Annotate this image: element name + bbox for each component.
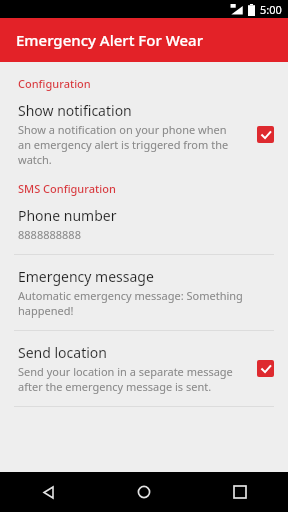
button[interactable]: Back — [0, 472, 96, 512]
button[interactable]: Toggle setting — [257, 360, 274, 377]
staticText: Send your location in a separate message — [18, 364, 233, 379]
staticText: Show notification — [18, 101, 132, 120]
button[interactable]: Phone number — [0, 206, 288, 242]
staticText: 8888888888 — [18, 227, 81, 242]
button[interactable]: Emergency message — [0, 267, 288, 318]
staticText: an emergency alert is triggered from the — [18, 137, 229, 152]
staticText: Send location — [18, 343, 107, 362]
staticText: Phone number — [18, 206, 117, 225]
staticText: happened! — [18, 303, 74, 318]
staticText: watch. — [18, 152, 52, 167]
button[interactable]: Send location — [0, 343, 288, 394]
staticText: Configuration — [18, 76, 91, 91]
staticText: 5:00 — [260, 2, 282, 17]
button[interactable]: Toggle setting — [257, 126, 274, 143]
button[interactable]: Recent apps — [192, 472, 288, 512]
staticText: Emergency message — [18, 267, 154, 286]
staticText: Automatic emergency message: Something — [18, 288, 243, 303]
staticText: after the emergency message is sent. — [18, 379, 212, 394]
button[interactable]: Show notification — [0, 101, 288, 167]
staticText: SMS Configuration — [18, 181, 116, 196]
staticText: Show a notification on your phone when — [18, 122, 227, 137]
staticText: Emergency Alert For Wear — [16, 30, 204, 50]
button[interactable]: Home — [96, 472, 192, 512]
